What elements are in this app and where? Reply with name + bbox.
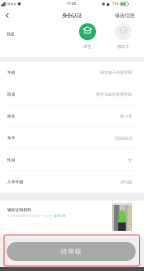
staticText: 姓名 (7, 114, 15, 119)
staticText: 曾小花 (120, 114, 132, 119)
button[interactable]: 证件照片 (112, 203, 132, 231)
button[interactable]: Back (0, 9, 15, 23)
button[interactable]: 学校 (0, 61, 144, 83)
button[interactable]: 姓名 (0, 105, 144, 127)
staticText: 入学年级 (7, 179, 23, 184)
staticText: 学校 (7, 70, 15, 75)
staticText: 待审核 (61, 247, 82, 256)
button[interactable]: 修改信息 (113, 8, 137, 22)
staticText: 院系 (7, 92, 15, 97)
staticText: 修改信息 (115, 12, 135, 19)
staticText: 哲学与政府管理学院 (96, 92, 132, 97)
staticText: 中国电信 (5, 2, 17, 6)
button[interactable]: 院系 (0, 83, 144, 105)
staticText: 身份认证 (62, 12, 82, 19)
button[interactable]: 入学年级 (0, 171, 144, 193)
staticText: 湖北电子科技学院 (100, 70, 132, 75)
staticText: 我是 (7, 32, 15, 37)
staticText: 17:28 (67, 2, 76, 6)
staticText: 查看示例 (54, 214, 66, 218)
staticText: 73% (112, 2, 118, 6)
button[interactable]: 学生 (73, 23, 101, 50)
staticText: 性别 (7, 158, 15, 162)
staticText: 辅助证明材料 (7, 207, 31, 212)
staticText: 女 (128, 158, 132, 162)
staticText: 请上传能证明你是学生的一个证件 (7, 214, 52, 218)
staticText: 2016级 (120, 179, 132, 185)
button[interactable]: 教职工 (109, 23, 137, 50)
button[interactable]: 查看示例 (54, 214, 66, 218)
staticText: 学号 (7, 136, 15, 141)
button[interactable]: 学号 (0, 127, 144, 149)
button[interactable]: 待审核 (7, 242, 136, 261)
staticText: 教职工 (117, 44, 129, 49)
staticText: 学生 (83, 44, 91, 49)
staticText: 123456520 (114, 135, 132, 141)
button[interactable]: 性别 (0, 149, 144, 171)
